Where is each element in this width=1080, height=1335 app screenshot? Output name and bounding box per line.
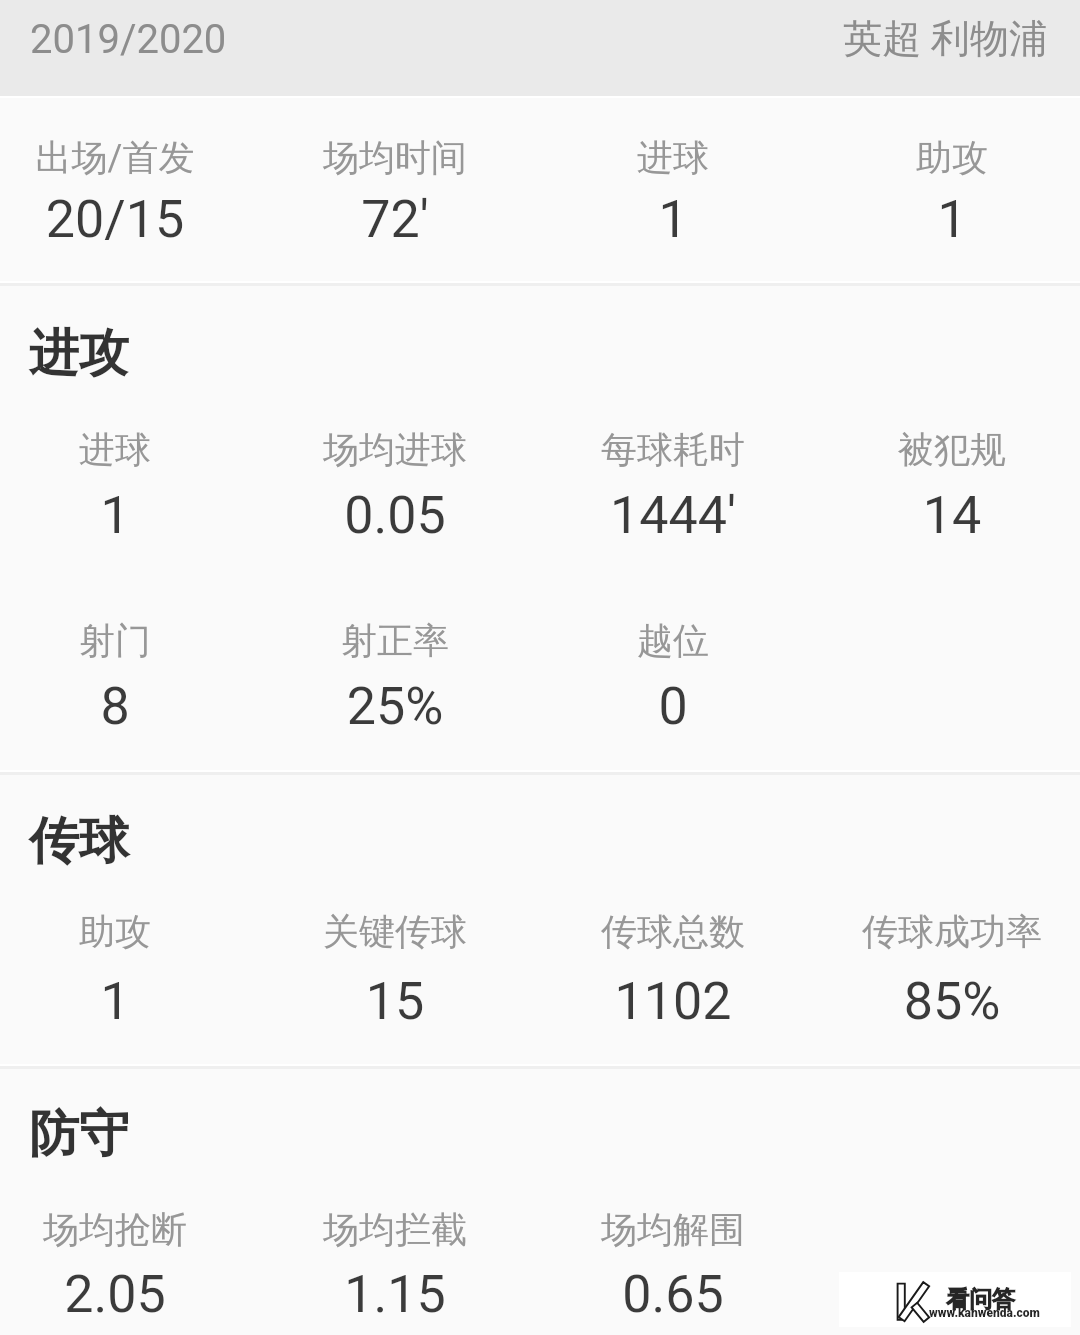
staticText: 场均进球	[195, 427, 595, 472]
staticText: 被犯规	[752, 427, 1080, 472]
button[interactable]: 出场/首发 20/15	[0, 111, 250, 255]
staticText: 2.05	[0, 1264, 315, 1325]
button[interactable]: kanwenda.com watermark	[839, 1272, 1071, 1327]
button[interactable]: 传球成功率 85%	[817, 885, 1080, 1037]
staticText: 射门	[0, 618, 315, 663]
staticText: 1	[0, 485, 315, 546]
button[interactable]: 场均拦截 1.15	[260, 1183, 530, 1330]
staticText: 1444'	[473, 485, 873, 546]
staticText: 关键传球	[195, 909, 595, 954]
button[interactable]: 被犯规 14	[817, 403, 1080, 551]
button[interactable]: 2019/2020 英超 利物浦	[0, 0, 1080, 96]
button[interactable]: 射门 8	[0, 594, 250, 742]
staticText: 1	[752, 189, 1080, 250]
staticText: 1	[0, 971, 315, 1032]
button[interactable]: 场均时间 72'	[260, 111, 530, 255]
staticText: 1	[473, 189, 873, 250]
button[interactable]: 进球 1	[0, 403, 250, 551]
staticText: 出场/首发	[0, 135, 315, 180]
staticText: 20/15	[0, 189, 315, 250]
staticText: 助攻	[752, 135, 1080, 180]
button[interactable]: 进球 1	[538, 111, 808, 255]
staticText: 8	[0, 676, 315, 737]
staticText: 1.15	[195, 1264, 595, 1325]
staticText: 2019/2020	[30, 16, 227, 63]
staticText: 进球	[473, 135, 873, 180]
button[interactable]: 关键传球 15	[260, 885, 530, 1037]
staticText: 进攻	[29, 322, 129, 385]
staticText: 助攻	[0, 909, 315, 954]
staticText: 场均时间	[195, 135, 595, 180]
staticText: 场均拦截	[195, 1207, 595, 1252]
staticText: 每球耗时	[473, 427, 873, 472]
staticText: 传球	[29, 810, 129, 873]
staticText: 传球总数	[473, 909, 873, 954]
staticText: 射正率	[195, 618, 595, 663]
staticText: 1102	[473, 971, 873, 1032]
staticText: 进球	[0, 427, 315, 472]
staticText: 场均解围	[473, 1207, 873, 1252]
staticText: 85%	[752, 971, 1080, 1032]
staticText: 0.65	[473, 1264, 873, 1325]
button[interactable]: 场均解围 0.65	[538, 1183, 808, 1330]
staticText: 15	[195, 971, 595, 1032]
button[interactable]: 场均抢断 2.05	[0, 1183, 250, 1330]
staticText: 看问答	[946, 1285, 1015, 1314]
button[interactable]	[0, 304, 260, 390]
staticText: 25%	[195, 676, 595, 737]
button[interactable]: 助攻 1	[817, 111, 1080, 255]
staticText: 传球成功率	[752, 909, 1080, 954]
button[interactable]	[0, 792, 260, 878]
button[interactable]: 越位 0	[538, 594, 808, 742]
staticText: 0.05	[195, 485, 595, 546]
button[interactable]: 场均进球 0.05	[260, 403, 530, 551]
button[interactable]	[0, 1085, 260, 1171]
staticText: 场均抢断	[0, 1207, 315, 1252]
staticText: 越位	[473, 618, 873, 663]
staticText: 英超 利物浦	[648, 14, 1048, 63]
staticText: 72'	[195, 189, 595, 250]
staticText: 14	[752, 485, 1080, 546]
button[interactable]: 传球总数 1102	[538, 885, 808, 1037]
staticText: 0	[473, 676, 873, 737]
staticText: www.kanwenda.com	[929, 1306, 1040, 1320]
button[interactable]: 助攻 1	[0, 885, 250, 1037]
button[interactable]: 每球耗时 1444'	[538, 403, 808, 551]
button[interactable]: 射正率 25%	[260, 594, 530, 742]
staticText: 防守	[29, 1103, 129, 1166]
